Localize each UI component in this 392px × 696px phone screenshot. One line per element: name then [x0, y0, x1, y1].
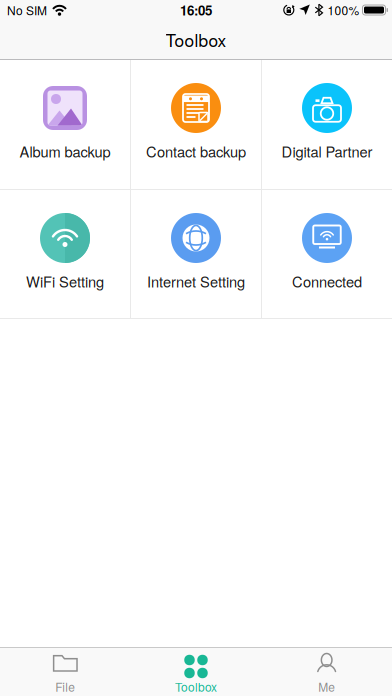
staticText: Internet Setting	[147, 271, 245, 291]
button[interactable]: Contact backup	[131, 60, 261, 189]
staticText: WiFi Setting	[26, 271, 104, 291]
staticText: Toolbox	[165, 27, 226, 52]
button[interactable]: Album backup	[0, 60, 130, 189]
button[interactable]: Connected	[262, 190, 392, 318]
staticText: No SIM	[7, 2, 47, 18]
button[interactable]: File	[0, 648, 131, 696]
button[interactable]: Internet Setting	[131, 190, 261, 318]
staticText: Digital Partner	[281, 141, 372, 161]
staticText: Me	[318, 678, 335, 695]
button[interactable]: Toolbox	[131, 648, 261, 696]
staticText: 100%	[327, 2, 359, 18]
staticText: Connected	[292, 271, 362, 291]
staticText: Contact backup	[146, 141, 246, 161]
staticText: Toolbox	[175, 678, 217, 695]
button[interactable]: Digital Partner	[262, 60, 392, 189]
staticText: Album backup	[19, 141, 110, 161]
button[interactable]: WiFi Setting	[0, 190, 130, 318]
staticText: File	[55, 678, 75, 695]
button[interactable]: Me	[261, 648, 392, 696]
staticText: 16:05	[180, 1, 212, 19]
